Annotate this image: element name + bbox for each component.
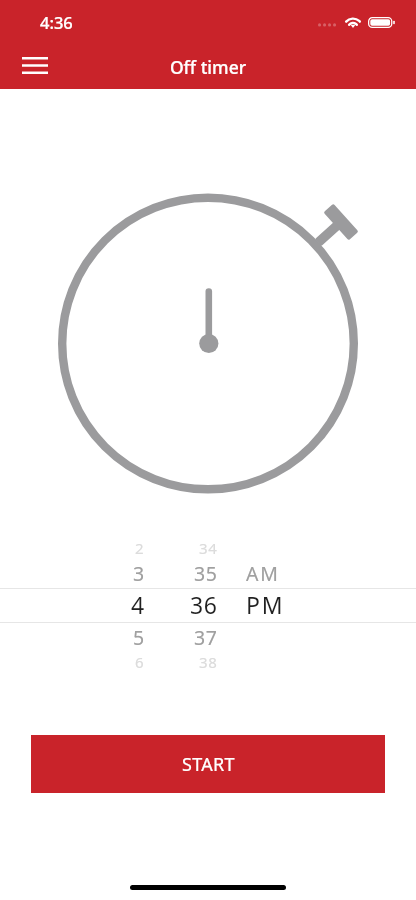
staticText: 37 xyxy=(194,624,218,651)
button[interactable]: 6 xyxy=(0,650,416,673)
staticText: 36 xyxy=(190,589,218,620)
button[interactable]: 4 xyxy=(0,588,416,621)
button[interactable]: START xyxy=(31,735,385,793)
staticText: 4 xyxy=(131,589,145,620)
button[interactable]: 3 xyxy=(0,559,416,587)
staticText: AM xyxy=(246,560,280,587)
staticText: 34 xyxy=(199,538,218,558)
button[interactable]: 2 xyxy=(0,536,416,559)
staticText: 3 xyxy=(133,560,145,587)
button[interactable]: 5 xyxy=(0,623,416,651)
staticText: 2 xyxy=(135,538,145,558)
staticText: PM xyxy=(246,589,285,620)
staticText: 6 xyxy=(135,652,145,672)
button[interactable]: Menu xyxy=(10,46,60,84)
staticText: 4:36 xyxy=(40,11,73,33)
staticText: Off timer xyxy=(0,55,416,79)
staticText: 38 xyxy=(199,652,218,672)
staticText: 5 xyxy=(133,624,145,651)
staticText: 35 xyxy=(194,560,218,587)
staticText: START xyxy=(182,752,235,777)
